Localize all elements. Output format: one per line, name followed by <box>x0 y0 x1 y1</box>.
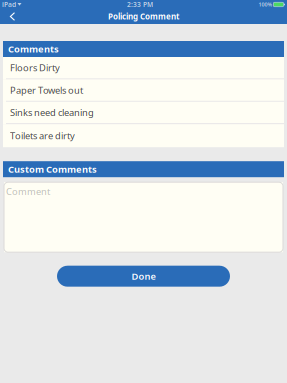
staticText: 2:33 PM <box>127 0 153 9</box>
staticText: Custom Comments <box>8 163 97 175</box>
button[interactable]: Floors Dirty <box>3 57 284 79</box>
button[interactable]: Done <box>57 266 230 287</box>
staticText: Sinks need cleaning <box>10 106 94 119</box>
staticText: Toilets are dirty <box>10 129 75 142</box>
staticText: Paper Towels out <box>10 84 83 96</box>
staticText: Done <box>131 270 155 282</box>
button[interactable]: Back <box>0 9 25 24</box>
staticText: Policing Comment <box>108 11 179 22</box>
staticText: iPad <box>2 0 16 9</box>
button[interactable]: Sinks need cleaning <box>3 102 284 124</box>
staticText: 100% <box>258 1 272 8</box>
staticText: Comments <box>8 43 59 55</box>
staticText: Comment <box>6 185 50 198</box>
button[interactable]: Paper Towels out <box>3 79 284 102</box>
staticText: Floors Dirty <box>10 61 60 74</box>
button[interactable]: Toilets are dirty <box>3 124 284 147</box>
